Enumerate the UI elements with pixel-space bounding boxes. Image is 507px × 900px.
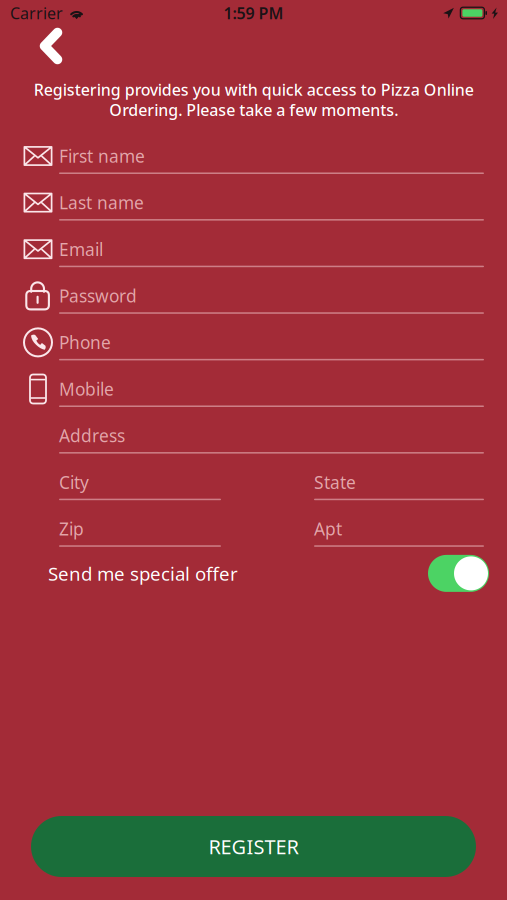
staticText: Email xyxy=(59,238,103,261)
staticText: Phone xyxy=(59,331,111,354)
staticText: City xyxy=(59,471,89,494)
button[interactable]: State xyxy=(314,466,484,512)
staticText: Send me special offer xyxy=(48,561,238,586)
button[interactable]: REGISTER xyxy=(31,816,476,877)
staticText: Carrier xyxy=(10,2,63,24)
button[interactable]: Last name xyxy=(23,186,484,233)
button[interactable]: Mobile xyxy=(23,372,484,419)
staticText: Apt xyxy=(314,517,342,540)
button[interactable]: Zip xyxy=(59,512,221,559)
button[interactable]: Apt xyxy=(314,512,484,559)
staticText: Password xyxy=(59,284,137,307)
button[interactable]: Phone xyxy=(23,326,484,372)
staticText: First name xyxy=(59,144,145,167)
staticText: Address xyxy=(59,424,125,447)
staticText: State xyxy=(314,471,356,494)
staticText: Mobile xyxy=(59,377,114,400)
button[interactable]: Back xyxy=(28,26,74,66)
staticText: REGISTER xyxy=(208,833,298,860)
staticText: Zip xyxy=(59,517,84,540)
button[interactable]: First name xyxy=(23,139,484,186)
button[interactable]: Password xyxy=(23,279,484,326)
button[interactable]: Send me special offer xyxy=(428,555,489,592)
button[interactable]: Email xyxy=(23,233,484,279)
staticText: 1:59 PM xyxy=(223,2,283,24)
button[interactable]: Address xyxy=(59,419,484,466)
button[interactable]: City xyxy=(59,466,221,512)
staticText: Last name xyxy=(59,191,144,214)
staticText: Registering provides you with quick acce… xyxy=(33,79,473,120)
